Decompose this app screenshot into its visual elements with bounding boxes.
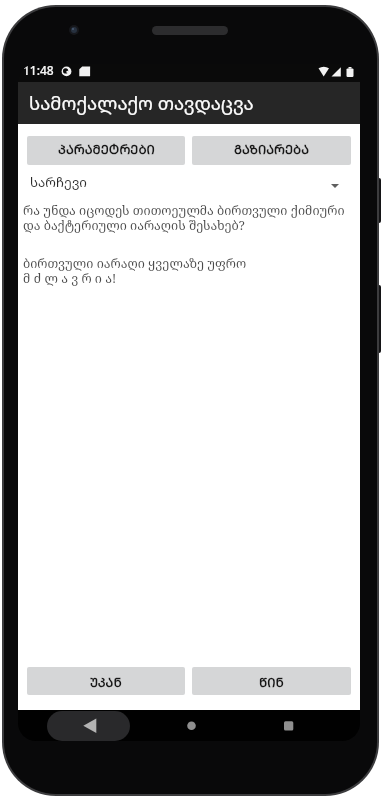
button[interactable] bbox=[268, 710, 309, 741]
button[interactable]: ᲬᲘᲜ bbox=[192, 667, 351, 695]
button[interactable]: ᲒᲐᲖᲘᲐᲠᲔᲑᲐ bbox=[192, 136, 351, 165]
staticText: სამოქალაქო თავდაცვა bbox=[29, 90, 254, 115]
staticText: ბირთვული იარაღი ყველაზე უფრო მ ძ ლ ა ვ რ… bbox=[23, 255, 247, 287]
staticText: ᲬᲘᲜ bbox=[259, 673, 284, 691]
staticText: რა უნდა იცოდეს თითოეულმა ბირთვული ქიმიურ… bbox=[23, 202, 345, 234]
button[interactable] bbox=[47, 711, 130, 741]
staticText: ᲒᲐᲖᲘᲐᲠᲔᲑᲐ bbox=[234, 140, 310, 158]
button[interactable] bbox=[171, 710, 212, 741]
staticText: 11:48 bbox=[23, 64, 54, 78]
staticText: ᲣᲙᲐᲜ bbox=[90, 673, 122, 691]
button[interactable]: ᲞᲐᲠᲐᲛᲔᲢᲠᲔᲑᲘ bbox=[27, 136, 185, 165]
staticText: სარჩევი bbox=[30, 173, 87, 191]
button[interactable]: ᲣᲙᲐᲜ bbox=[27, 667, 185, 695]
button[interactable]: სარჩევი bbox=[18, 165, 360, 195]
staticText: ᲞᲐᲠᲐᲛᲔᲢᲠᲔᲑᲘ bbox=[58, 140, 155, 158]
